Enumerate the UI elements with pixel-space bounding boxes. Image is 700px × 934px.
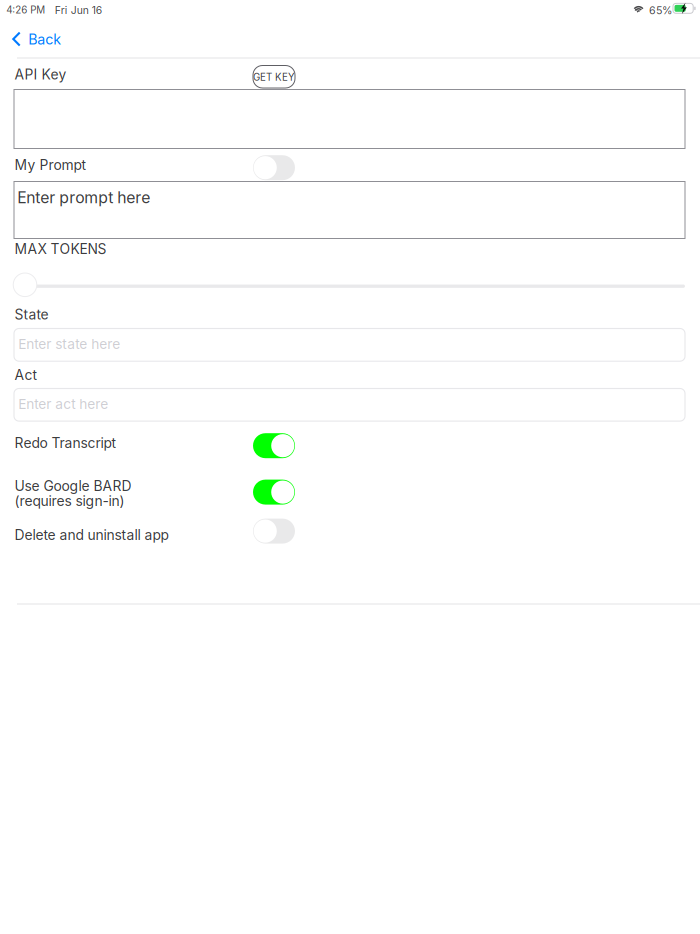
staticText: Enter prompt here	[17, 188, 150, 207]
staticText: My Prompt	[14, 156, 86, 173]
button[interactable]: GET KEY	[253, 65, 295, 88]
button[interactable]: State	[14, 328, 685, 361]
staticText: 65%	[649, 4, 672, 17]
button[interactable]: Back	[12, 30, 61, 49]
staticText: Back	[28, 31, 61, 48]
button[interactable]: Enter prompt here	[14, 181, 685, 238]
button[interactable]: Act	[14, 388, 685, 421]
staticText: Fri Jun 16	[55, 4, 102, 17]
staticText: State	[14, 306, 48, 323]
button[interactable]: Delete and uninstall app	[0, 0, 286, 33]
button[interactable]: Use Google BARD	[0, 0, 286, 33]
button[interactable]: API Key	[14, 89, 685, 148]
staticText: Redo Transcript	[14, 434, 116, 451]
staticText: GET KEY	[253, 71, 295, 83]
staticText: 4:26 PM	[6, 4, 45, 16]
staticText: Enter act here	[18, 396, 108, 412]
staticText: MAX TOKENS	[14, 240, 106, 257]
staticText: Use Google BARD	[14, 477, 131, 494]
staticText: Act	[14, 366, 37, 383]
button[interactable]: Max tokens	[13, 273, 37, 297]
staticText: API Key	[14, 66, 66, 83]
staticText: Delete and uninstall app	[14, 526, 168, 543]
button[interactable]: My Prompt	[0, 0, 286, 33]
staticText: (requires sign-in)	[14, 493, 124, 509]
staticText: Enter state here	[18, 336, 120, 352]
button[interactable]: Redo Transcript	[0, 0, 286, 33]
